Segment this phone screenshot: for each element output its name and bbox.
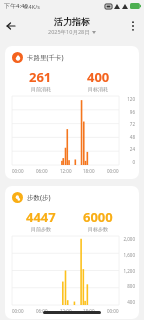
staticText: 400	[87, 68, 110, 86]
staticText: 0.4K/s	[24, 3, 40, 10]
staticText: 06:00	[36, 308, 48, 314]
staticText: 目前步数	[31, 226, 51, 232]
button[interactable]: 更多选项	[122, 15, 144, 37]
button[interactable]: 2025年10月28日	[48, 28, 96, 36]
staticText: 目标步数	[88, 226, 108, 232]
button[interactable]: 步数(步)	[5, 186, 139, 319]
staticText: 06:00	[36, 168, 48, 174]
staticText: 6000	[83, 208, 113, 226]
staticText: 261	[29, 68, 52, 86]
staticText: 0	[132, 159, 135, 165]
staticText: 00:00	[107, 168, 119, 174]
staticText: 2025年10月28日	[48, 28, 90, 36]
staticText: 目前消耗	[31, 86, 51, 92]
staticText: 24	[129, 146, 135, 152]
staticText: 18:00	[83, 308, 95, 314]
staticText: 72	[129, 121, 135, 127]
staticText: 卡路里(千卡)	[27, 53, 64, 62]
staticText: 下午4:40	[4, 2, 28, 10]
staticText: 00:00	[12, 308, 24, 314]
staticText: 96	[129, 109, 135, 115]
staticText: 48	[129, 134, 135, 140]
staticText: 活力指标	[54, 16, 90, 27]
staticText: 00:00	[107, 308, 119, 314]
staticText: 800	[127, 283, 135, 289]
staticText: 12:00	[60, 308, 72, 314]
staticText: 2,000	[123, 236, 135, 242]
staticText: 1,600	[123, 252, 135, 258]
staticText: 目标消耗	[88, 86, 108, 92]
staticText: 步数(步)	[27, 193, 51, 202]
staticText: 1,200	[123, 268, 135, 274]
button[interactable]: 返回	[0, 15, 22, 37]
staticText: 400	[127, 299, 135, 305]
staticText: 18:00	[83, 168, 95, 174]
staticText: 00:00	[12, 168, 24, 174]
staticText: 4447	[26, 208, 56, 226]
button[interactable]: 卡路里(千卡)	[5, 46, 139, 179]
staticText: 12:00	[60, 168, 72, 174]
staticText: 120	[127, 96, 135, 102]
